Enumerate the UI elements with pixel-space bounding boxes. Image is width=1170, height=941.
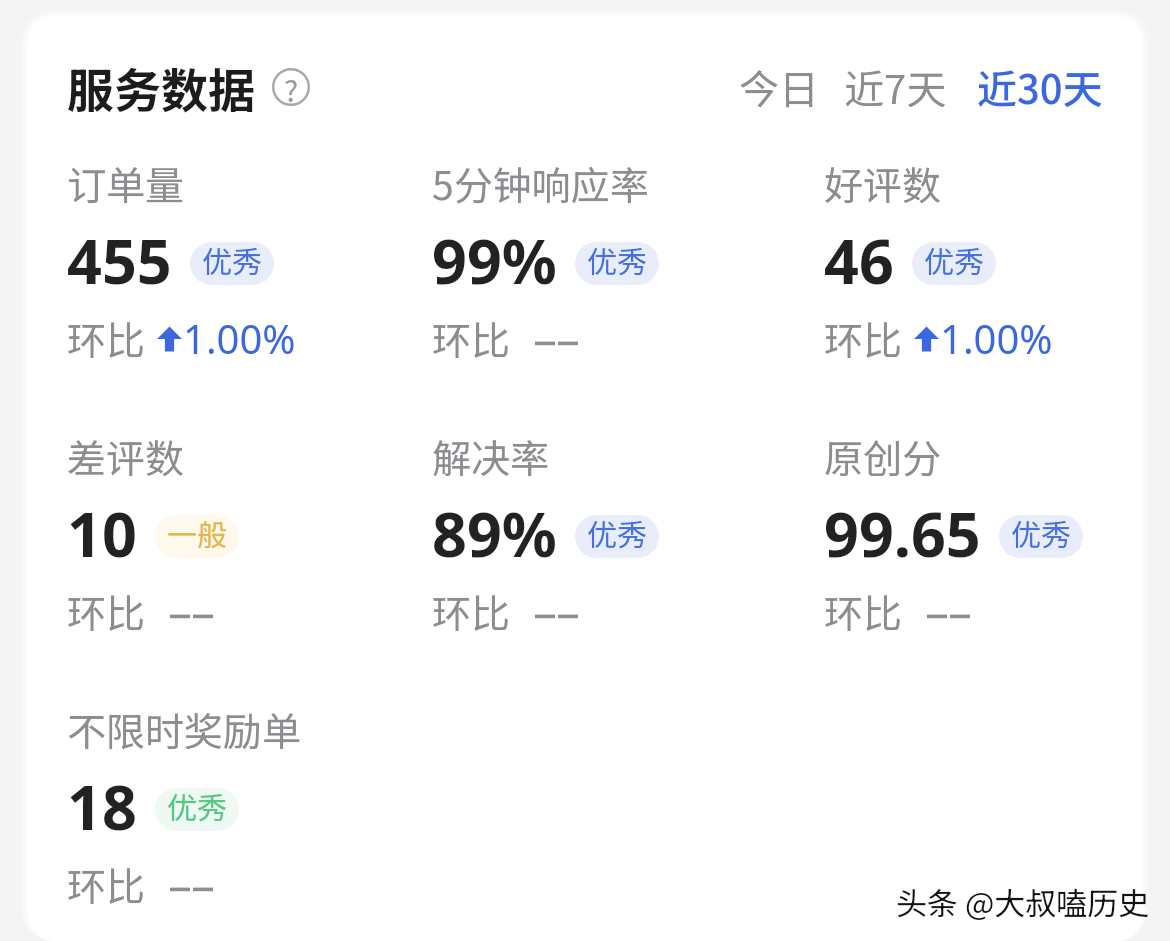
button[interactable]: 优秀: [155, 788, 239, 831]
staticText: 差评数: [67, 428, 185, 484]
staticText: 环比: [67, 856, 146, 912]
staticText: 不限时奖励单: [67, 701, 302, 757]
button[interactable]: 今日: [735, 53, 823, 121]
staticText: 优秀: [587, 515, 647, 554]
button[interactable]: 优秀: [999, 515, 1083, 558]
staticText: 优秀: [587, 242, 647, 281]
staticText: 环比: [67, 310, 146, 366]
staticText: 10: [67, 492, 137, 575]
staticText: 环比: [824, 310, 903, 366]
button[interactable]: 优秀: [912, 242, 996, 285]
staticText: 优秀: [1011, 515, 1071, 554]
button[interactable]: 差评数: [67, 428, 432, 639]
button[interactable]: 5分钟响应率: [432, 155, 824, 366]
button[interactable]: 近7天: [840, 53, 951, 121]
staticText: 455: [67, 219, 172, 302]
button[interactable]: 优秀: [575, 242, 659, 285]
staticText: 今日: [739, 58, 819, 116]
staticText: 环比: [432, 583, 511, 639]
staticText: 原创分: [824, 428, 942, 484]
staticText: 环比: [824, 583, 903, 639]
button[interactable]: 不限时奖励单: [67, 701, 432, 912]
staticText: 99.65: [824, 492, 981, 575]
staticText: 近30天: [977, 58, 1103, 116]
staticText: 订单量: [67, 155, 185, 211]
staticText: 46: [824, 219, 894, 302]
button[interactable]: 一般: [155, 515, 239, 558]
staticText: 99%: [432, 219, 557, 302]
staticText: 环比: [432, 310, 511, 366]
button[interactable]: 原创分: [824, 428, 1107, 639]
staticText: 好评数: [824, 155, 942, 211]
button[interactable]: 优秀: [575, 515, 659, 558]
staticText: 5分钟响应率: [432, 155, 649, 211]
staticText: 89%: [432, 492, 557, 575]
staticText: 近7天: [844, 58, 947, 116]
button[interactable]: 优秀: [190, 242, 274, 285]
staticText: 优秀: [924, 242, 984, 281]
staticText: 1.00%: [183, 311, 296, 365]
staticText: 18: [67, 765, 137, 848]
button[interactable]: 解决率: [432, 428, 824, 639]
staticText: 优秀: [202, 242, 262, 281]
staticText: 服务数据: [67, 53, 255, 121]
staticText: 1.00%: [940, 311, 1053, 365]
staticText: 优秀: [167, 788, 227, 827]
button[interactable]: 近30天: [973, 53, 1107, 121]
staticText: 一般: [167, 515, 227, 554]
staticText: 环比: [67, 583, 146, 639]
button[interactable]: Help: [272, 68, 310, 106]
staticText: 解决率: [432, 428, 550, 484]
staticText: 头条 @大叔嗑历史: [896, 879, 1150, 924]
staticText: ?: [284, 67, 299, 105]
button[interactable]: 订单量: [67, 155, 432, 366]
button[interactable]: 好评数: [824, 155, 1107, 366]
